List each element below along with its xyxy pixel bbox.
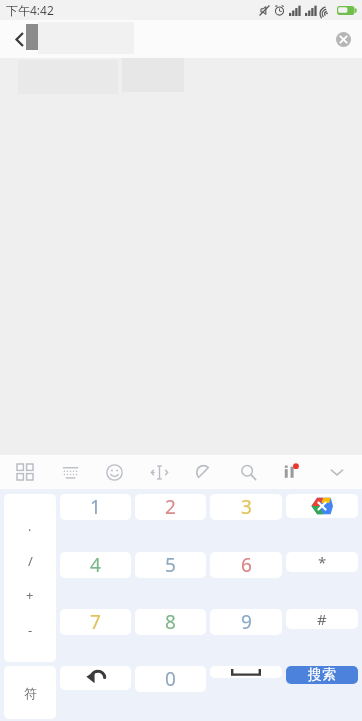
button[interactable]: Sogou — [277, 457, 307, 487]
button[interactable]: Apps — [10, 457, 40, 487]
staticText: 9 — [241, 609, 252, 635]
button[interactable]: 2 — [135, 494, 206, 520]
staticText: 下午4:42 — [6, 2, 54, 18]
button[interactable]: 9 — [210, 609, 282, 635]
button[interactable]: Search — [233, 457, 263, 487]
button[interactable]: Return — [60, 666, 131, 690]
staticText: 0 — [165, 666, 176, 692]
button[interactable]: 7 — [60, 609, 131, 635]
button[interactable]: Keyboard — [55, 457, 85, 487]
button[interactable]: Space — [210, 666, 282, 678]
staticText: * — [318, 552, 327, 572]
button[interactable]: Clipboard — [188, 457, 218, 487]
staticText: / — [28, 552, 33, 570]
staticText: 4 — [90, 552, 101, 578]
button[interactable]: Collapse — [322, 457, 352, 487]
button[interactable]: 6 — [210, 552, 282, 578]
staticText: 1 — [90, 494, 101, 520]
staticText: 3 — [241, 494, 252, 520]
staticText: - — [28, 621, 33, 639]
button[interactable]: Delete — [286, 494, 358, 518]
staticText: 8 — [165, 609, 176, 635]
staticText: . — [28, 517, 32, 535]
staticText: + — [26, 586, 34, 604]
staticText: 2 — [165, 494, 176, 520]
button[interactable]: Back — [0, 20, 38, 58]
staticText: # — [317, 609, 327, 629]
button[interactable]: 1 — [60, 494, 131, 520]
button[interactable]: 8 — [135, 609, 206, 635]
button[interactable]: # — [286, 609, 358, 629]
button[interactable]: Text direction — [144, 457, 174, 487]
button[interactable]: * — [286, 552, 358, 572]
staticText: 搜索 — [308, 666, 336, 684]
button[interactable]: 5 — [135, 552, 206, 578]
button[interactable]: Emoji — [99, 457, 129, 487]
button[interactable]: Close — [330, 26, 356, 52]
button[interactable]: 0 — [135, 666, 206, 692]
button[interactable]: 3 — [210, 494, 282, 520]
staticText: 7 — [90, 609, 101, 635]
button[interactable]: 符 — [4, 666, 56, 719]
staticText: 5 — [165, 552, 176, 578]
button[interactable]: 4 — [60, 552, 131, 578]
button[interactable]: 搜索 — [286, 666, 358, 684]
button[interactable]: . — [4, 494, 56, 662]
staticText: 符 — [24, 685, 37, 701]
staticText: 6 — [241, 552, 252, 578]
